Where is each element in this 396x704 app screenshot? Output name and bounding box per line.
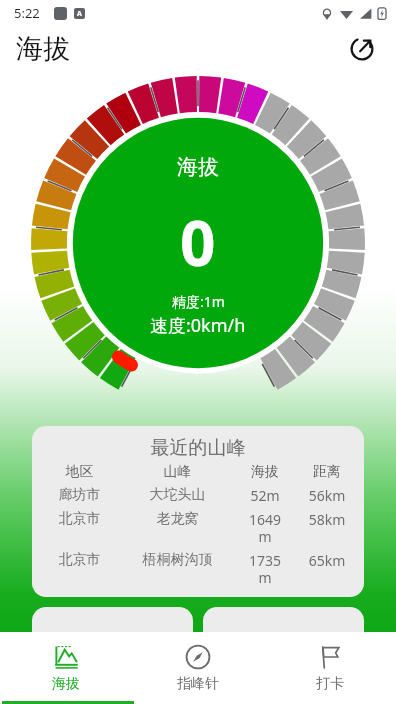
button[interactable] bbox=[203, 607, 364, 632]
staticText: 海拔 bbox=[234, 463, 296, 481]
staticText: 地区 bbox=[38, 463, 121, 481]
staticText: 海拔 bbox=[177, 154, 219, 180]
staticText: 56km bbox=[296, 486, 358, 505]
staticText: 58km bbox=[296, 510, 358, 529]
button[interactable]: Share bbox=[342, 29, 382, 69]
button[interactable]: 指峰针 bbox=[132, 632, 264, 704]
staticText: 海拔 bbox=[16, 32, 70, 66]
staticText: 北京市 bbox=[38, 510, 121, 528]
staticText: 大坨头山 bbox=[121, 486, 234, 504]
staticText: 廊坊市 bbox=[38, 486, 121, 504]
staticText: 0 bbox=[180, 200, 216, 284]
staticText: 最近的山峰 bbox=[38, 436, 358, 460]
staticText: 梧桐树沟顶 bbox=[121, 551, 234, 569]
staticText: 精度:1m bbox=[172, 292, 225, 311]
staticText: 1649 m bbox=[234, 510, 296, 546]
staticText: 海拔 bbox=[52, 675, 80, 693]
staticText: 距离 bbox=[296, 463, 358, 481]
staticText: 北京市 bbox=[38, 551, 121, 569]
staticText: 打卡 bbox=[316, 675, 344, 693]
button[interactable]: 最近的山峰 bbox=[32, 426, 364, 597]
staticText: 65km bbox=[296, 551, 358, 570]
staticText: 52m bbox=[234, 486, 296, 505]
staticText: 指峰针 bbox=[177, 675, 219, 693]
button[interactable]: 打卡 bbox=[264, 632, 396, 704]
button[interactable]: 海拔 bbox=[0, 632, 132, 704]
staticText: 1735 m bbox=[234, 551, 296, 587]
button[interactable] bbox=[32, 607, 193, 632]
staticText: A bbox=[77, 9, 82, 19]
staticText: 5:22 bbox=[14, 4, 40, 22]
staticText: 速度:0km/h bbox=[150, 313, 246, 338]
staticText: 老龙窝 bbox=[121, 510, 234, 528]
staticText: 山峰 bbox=[121, 463, 234, 481]
